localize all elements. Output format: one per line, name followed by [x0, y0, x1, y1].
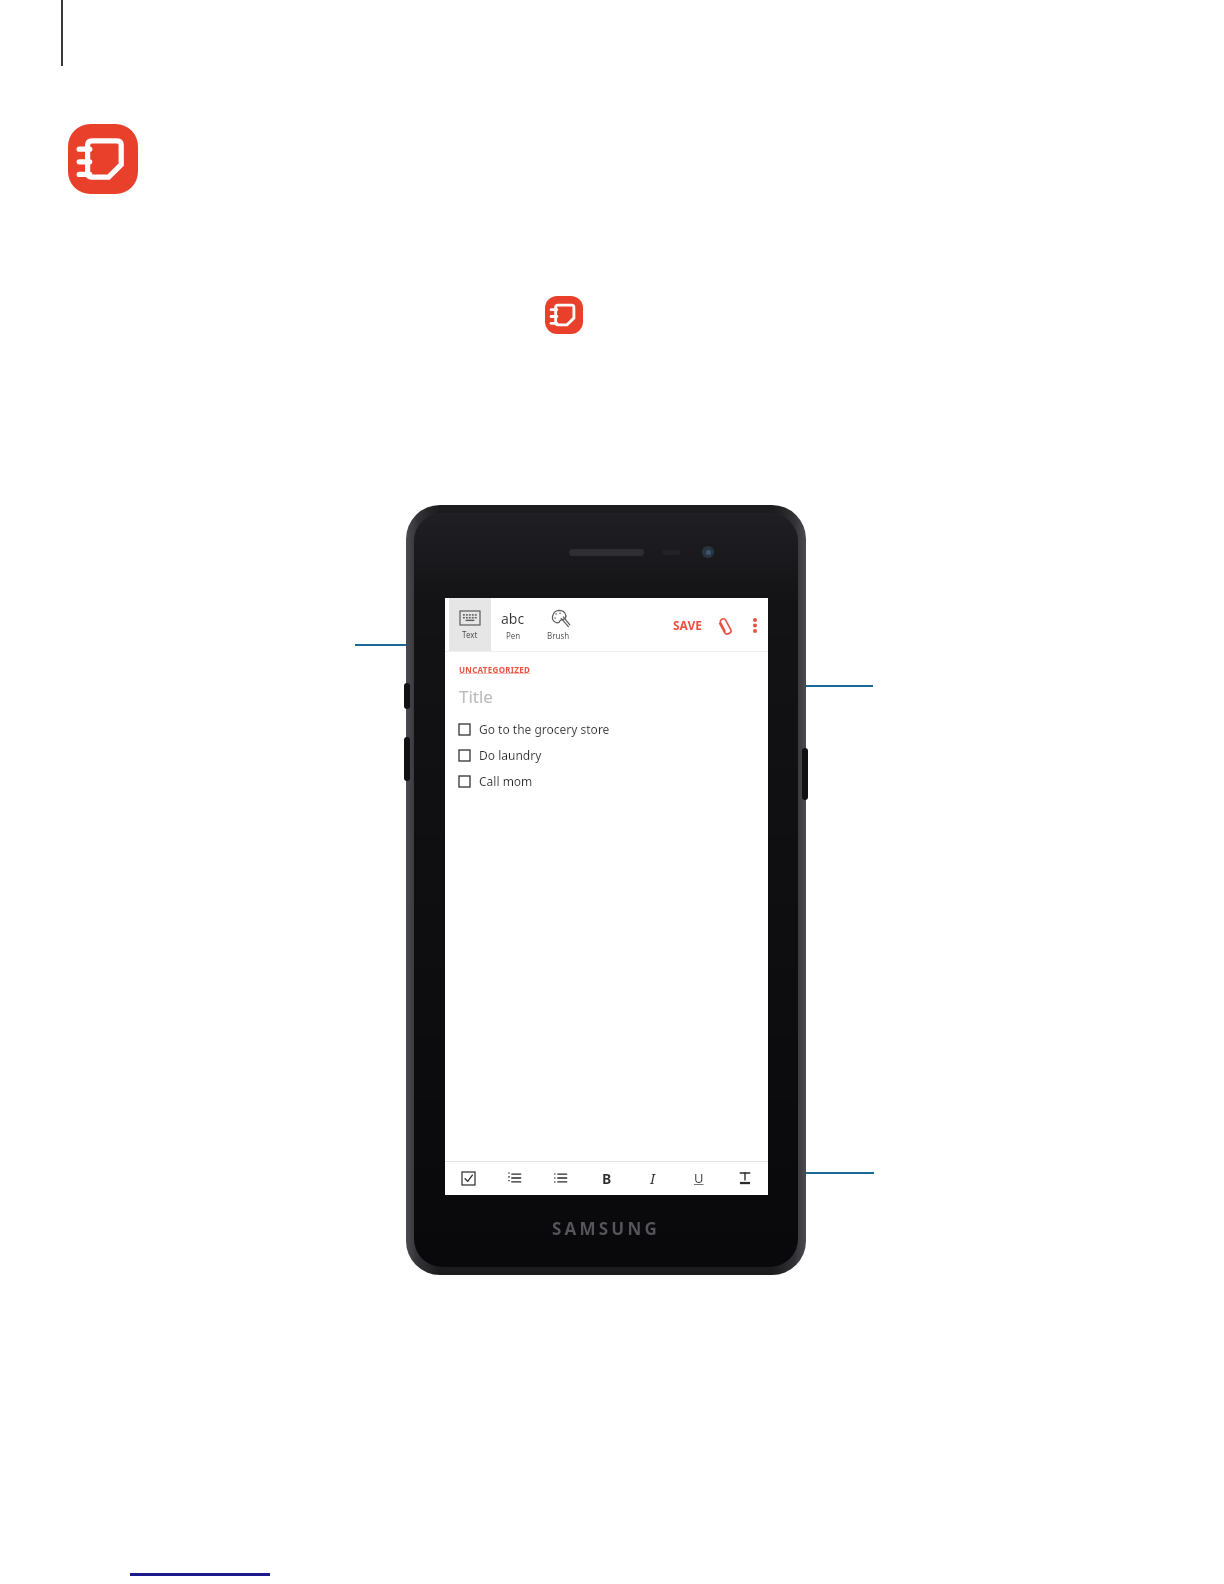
button[interactable]: Attach	[708, 598, 742, 652]
staticText: Title	[459, 685, 493, 708]
button[interactable]: Checklist	[455, 1165, 481, 1191]
button[interactable]: More options	[742, 598, 768, 652]
staticText: U	[694, 1169, 704, 1187]
button[interactable]: Bulleted list	[547, 1165, 573, 1191]
button[interactable]: abc	[491, 598, 535, 652]
staticText: Brush	[547, 630, 570, 641]
button[interactable]: SAVE	[667, 598, 708, 652]
staticText: SAMSUNG	[552, 1217, 660, 1240]
button[interactable]: Samsung Notes	[68, 124, 138, 194]
staticText: Pen	[506, 630, 521, 641]
button[interactable]: UNCATEGORIZED	[459, 664, 531, 675]
button[interactable]: Text style	[732, 1165, 758, 1191]
button[interactable]: Brush	[535, 598, 581, 652]
staticText: I	[650, 1169, 656, 1188]
button[interactable]: Italic	[640, 1165, 666, 1191]
staticText: UNCATEGORIZED	[459, 664, 531, 675]
staticText: Go to the grocery store	[479, 721, 610, 737]
button[interactable]: Numbered list	[501, 1165, 527, 1191]
staticText: abc	[501, 609, 525, 628]
staticText: Text	[462, 629, 478, 640]
button[interactable]: Bold	[594, 1165, 620, 1191]
button[interactable]: Text	[449, 598, 491, 652]
button[interactable]: Do laundry	[459, 742, 768, 768]
staticText: Do laundry	[479, 747, 542, 763]
button[interactable]: Underline	[686, 1165, 712, 1191]
button[interactable]: Go to the grocery store	[459, 716, 768, 742]
staticText: Call mom	[479, 773, 533, 789]
button[interactable]: Call mom	[459, 768, 768, 794]
staticText: B	[602, 1169, 612, 1188]
button[interactable]: Samsung Notes	[545, 296, 583, 334]
staticText: SAVE	[673, 617, 702, 633]
